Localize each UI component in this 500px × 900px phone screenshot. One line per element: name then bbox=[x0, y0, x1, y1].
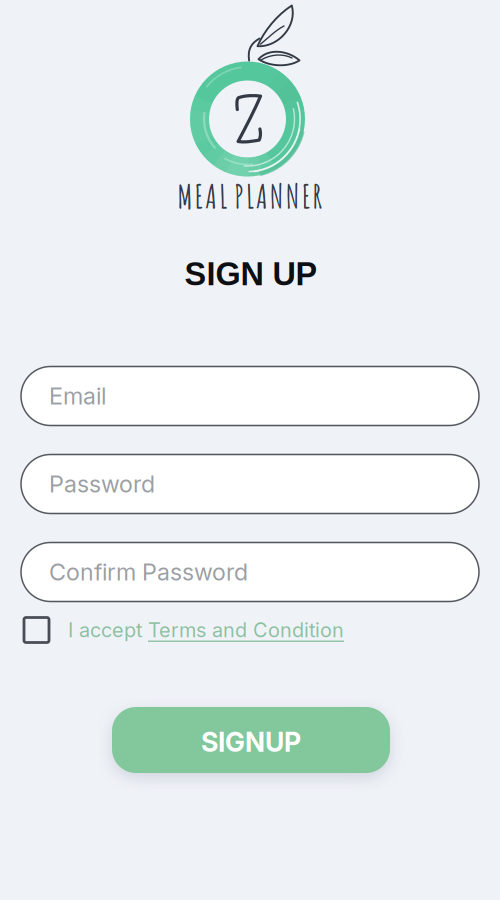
staticText: Password bbox=[49, 470, 155, 498]
button[interactable]: Confirm Password bbox=[21, 542, 479, 601]
staticText: L bbox=[246, 175, 254, 217]
staticText: E bbox=[302, 175, 311, 217]
staticText: Terms and Condition bbox=[148, 618, 344, 642]
staticText: N bbox=[270, 175, 284, 217]
staticText: Confirm Password bbox=[49, 558, 248, 586]
staticText: N bbox=[286, 175, 300, 217]
staticText: R bbox=[313, 175, 323, 217]
button[interactable]: Password bbox=[21, 454, 479, 513]
button[interactable]: I accept bbox=[68, 618, 344, 642]
staticText: SIGNUP bbox=[201, 726, 301, 758]
staticText: I accept bbox=[68, 618, 148, 642]
staticText: A bbox=[256, 175, 268, 217]
button[interactable]: Email bbox=[21, 366, 479, 425]
staticText: A bbox=[205, 175, 217, 217]
staticText: E bbox=[194, 175, 203, 217]
staticText: M bbox=[177, 175, 192, 217]
staticText: P bbox=[234, 175, 244, 217]
staticText: Email bbox=[49, 382, 106, 410]
staticText: L bbox=[219, 175, 227, 217]
button[interactable]: SIGNUP bbox=[112, 707, 390, 773]
staticText: SIGN UP bbox=[184, 256, 317, 292]
button[interactable]: Accept terms and conditions bbox=[24, 617, 49, 642]
